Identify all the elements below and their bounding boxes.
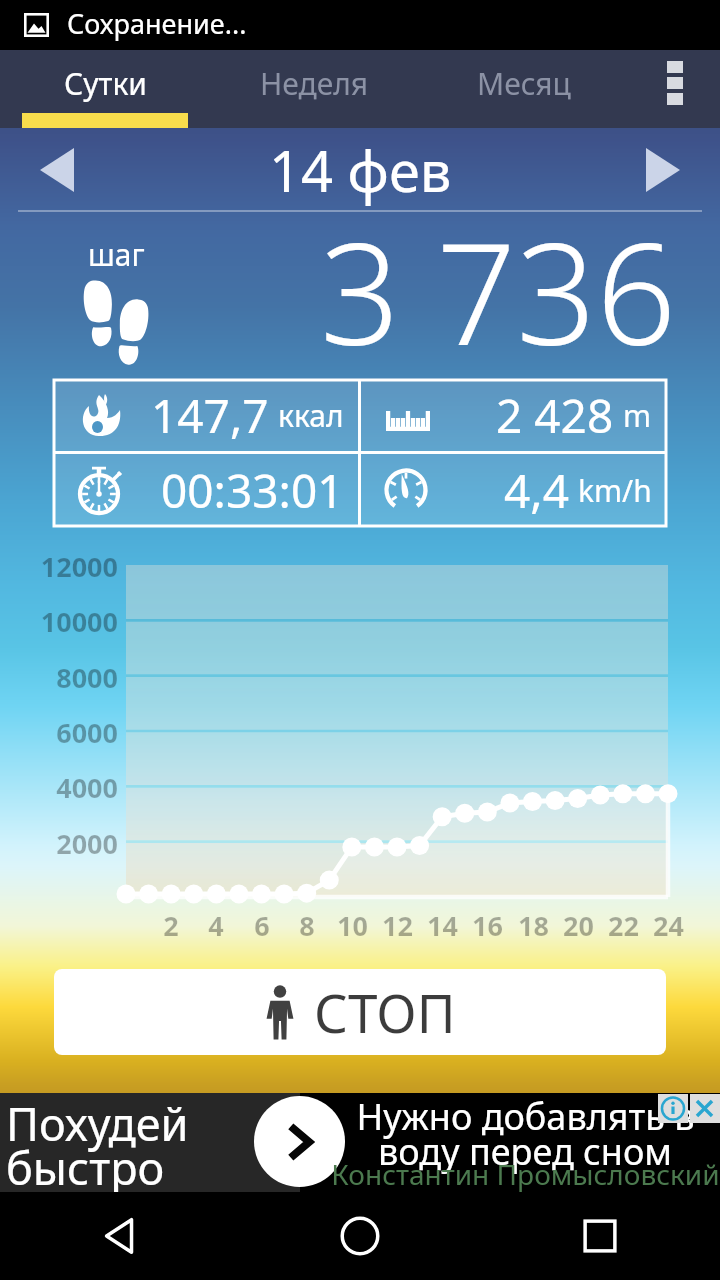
button[interactable]: Сутки [0, 50, 210, 116]
button[interactable]: Ad info [658, 1094, 688, 1123]
staticText: 24 [653, 907, 684, 944]
staticText: km/h [578, 470, 652, 511]
staticText: Сутки [64, 63, 147, 104]
staticText: 2 428 [496, 384, 614, 447]
staticText: 12000 [40, 548, 118, 585]
button[interactable]: Next day [606, 128, 720, 212]
staticText: 18 [518, 907, 549, 944]
staticText: 12 [382, 907, 413, 944]
staticText: быстро [6, 1137, 165, 1198]
button[interactable]: 2 428 [361, 380, 666, 451]
button[interactable]: Месяц [418, 50, 630, 116]
staticText: 22 [608, 907, 639, 944]
staticText: Нужно добавлять в [356, 1092, 695, 1141]
staticText: 4,4 [504, 459, 569, 522]
staticText: ккал [278, 395, 344, 436]
staticText: 4 [208, 907, 224, 944]
staticText: Константин Промысловский [331, 1155, 720, 1193]
staticText: воду перед сном [378, 1127, 672, 1176]
staticText: 3 736 [320, 195, 677, 386]
staticText: 2000 [56, 825, 118, 862]
button[interactable]: 4,4 [361, 454, 666, 526]
button[interactable]: Previous day [0, 128, 114, 212]
staticText: 6 [254, 907, 270, 944]
staticText: СТОП [314, 976, 456, 1048]
button[interactable]: More options [630, 50, 720, 116]
staticText: 6000 [56, 714, 118, 751]
button[interactable]: Recents [480, 1192, 720, 1280]
staticText: 14 фев [269, 132, 452, 208]
staticText: 8000 [56, 659, 118, 696]
staticText: 147,7 [151, 384, 269, 447]
button[interactable]: Похудей [0, 1093, 720, 1192]
button[interactable]: СТОП [54, 969, 666, 1055]
staticText: 00:33:01 [161, 459, 344, 522]
staticText: Месяц [477, 63, 571, 104]
staticText: 8 [299, 907, 315, 944]
staticText: m [623, 395, 652, 436]
staticText: 20 [563, 907, 594, 944]
staticText: 4000 [56, 769, 118, 806]
staticText: Неделя [260, 63, 369, 104]
staticText: 10000 [40, 603, 118, 640]
staticText: Похудей [6, 1093, 189, 1154]
button[interactable]: Home [240, 1192, 480, 1280]
staticText: 16 [472, 907, 503, 944]
staticText: 2 [163, 907, 179, 944]
button[interactable]: Back [0, 1192, 240, 1280]
button[interactable]: Неделя [210, 50, 418, 116]
staticText: шаг [88, 234, 145, 275]
staticText: Сохранение... [67, 5, 247, 42]
button[interactable]: Close ad [690, 1094, 720, 1123]
staticText: 10 [337, 907, 368, 944]
button[interactable]: 00:33:01 [54, 454, 358, 526]
staticText: 14 [427, 907, 458, 944]
button[interactable]: 147,7 [54, 380, 358, 451]
